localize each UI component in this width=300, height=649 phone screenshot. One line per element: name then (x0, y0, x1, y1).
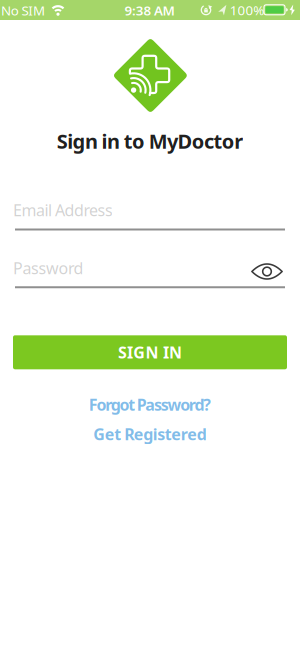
staticText: Get Registered (93, 423, 207, 445)
staticText: Email Address (13, 199, 113, 221)
button[interactable]: Email Address (13, 196, 287, 231)
staticText: Forgot Password? (89, 394, 211, 415)
staticText: Sign in to MyDoctor (57, 128, 243, 154)
staticText: SIGN IN (118, 342, 182, 363)
button[interactable]: Forgot Password? (89, 394, 211, 415)
staticText: Password (13, 257, 83, 279)
button[interactable]: SIGN IN (13, 335, 287, 369)
button[interactable]: Password (13, 253, 287, 288)
button[interactable]: Show password (247, 257, 287, 285)
staticText: 100% (230, 1, 264, 19)
button[interactable]: Get Registered (93, 423, 207, 445)
staticText: 9:38 AM (124, 1, 175, 19)
staticText: No SIM (1, 1, 45, 19)
